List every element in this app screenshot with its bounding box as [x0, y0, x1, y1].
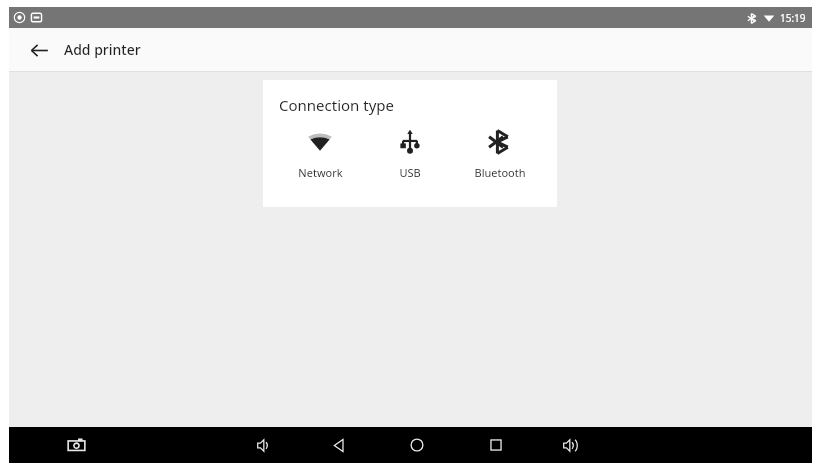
button[interactable]: Recent apps [481, 430, 511, 460]
staticText: USB [399, 165, 421, 180]
button[interactable]: Back [323, 430, 353, 460]
button[interactable]: Volume down [249, 430, 279, 460]
button[interactable]: Screenshot [61, 430, 91, 460]
staticText: Network [298, 165, 343, 180]
button[interactable]: Network [275, 125, 365, 184]
button[interactable]: Home [402, 430, 432, 460]
staticText: Bluetooth [474, 165, 526, 180]
staticText: 15:19 [780, 11, 806, 25]
button[interactable]: Back [21, 32, 57, 68]
button[interactable]: USB [365, 125, 455, 184]
button[interactable]: Volume up [555, 430, 585, 460]
staticText: Add printer [64, 40, 141, 59]
staticText: Connection type [279, 95, 395, 115]
button[interactable]: Bluetooth [455, 125, 545, 184]
